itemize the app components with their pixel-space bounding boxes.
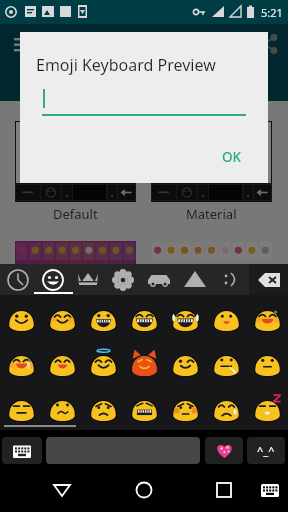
staticText: ^_^ xyxy=(257,443,275,458)
button[interactable]: Emoji xyxy=(124,295,165,340)
button[interactable]: Default xyxy=(15,121,136,268)
button[interactable]: Emoji xyxy=(0,385,42,430)
button[interactable]: Share xyxy=(251,27,285,61)
button[interactable]: Kaomoji xyxy=(247,437,285,464)
button[interactable]: Back xyxy=(40,468,84,512)
button[interactable]: Emoji xyxy=(165,385,206,430)
button[interactable]: Space xyxy=(46,437,200,464)
button[interactable]: Emoji xyxy=(42,295,83,340)
button[interactable]: Home xyxy=(122,468,166,512)
button[interactable]: Emoji xyxy=(247,295,288,340)
button[interactable]: Smileys xyxy=(35,264,70,295)
button[interactable]: Travel xyxy=(141,264,177,295)
button[interactable]: Emoji xyxy=(124,340,165,385)
button[interactable]: Emoji xyxy=(42,340,83,385)
button[interactable]: Material xyxy=(151,121,272,268)
button[interactable]: Switch keyboard xyxy=(2,437,42,464)
staticText: Material xyxy=(186,205,237,223)
button[interactable]: Emoji xyxy=(83,295,124,340)
button[interactable]: Emoji xyxy=(247,340,288,385)
button[interactable]: Emoji xyxy=(42,385,83,430)
button[interactable]: Objects xyxy=(177,264,213,295)
button[interactable]: Emoji xyxy=(247,385,288,430)
button[interactable]: Recents xyxy=(202,468,246,512)
button[interactable]: Switch input method xyxy=(253,468,287,512)
button[interactable]: Emoji xyxy=(206,340,247,385)
button[interactable]: Emoji xyxy=(124,385,165,430)
button[interactable]: Emoji xyxy=(0,295,42,340)
button[interactable]: Navigation menu xyxy=(5,27,39,61)
button[interactable]: Emoji xyxy=(165,340,206,385)
staticText: OK xyxy=(222,148,242,166)
staticText: 5:21 xyxy=(261,5,283,20)
button[interactable]: Emoji xyxy=(0,340,42,385)
button[interactable]: Emoji xyxy=(165,295,206,340)
button[interactable]: Emoji xyxy=(83,340,124,385)
button[interactable]: Recent xyxy=(0,264,35,295)
button[interactable]: Nature xyxy=(105,264,141,295)
button[interactable]: People xyxy=(70,264,105,295)
button[interactable]: Emoji xyxy=(206,295,247,340)
button[interactable]: Favourites xyxy=(205,437,243,464)
button[interactable]: Emoji xyxy=(83,385,124,430)
button[interactable]: Emoji xyxy=(206,385,247,430)
staticText: Default xyxy=(53,205,98,223)
button[interactable]: Backspace xyxy=(249,264,288,295)
button[interactable]: Symbols xyxy=(213,264,249,295)
staticText: Emoji Keyboard Preview xyxy=(36,54,216,76)
button[interactable]: OK xyxy=(212,141,252,173)
